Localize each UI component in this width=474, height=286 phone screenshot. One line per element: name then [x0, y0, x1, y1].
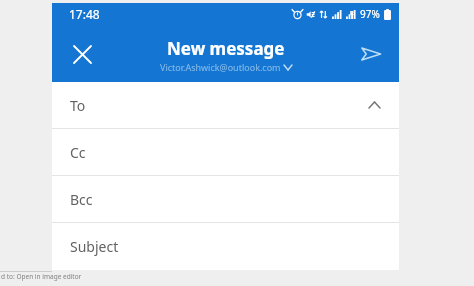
button[interactable]: Victor.Ashwick@outlook.com	[160, 61, 292, 73]
staticText: Subject	[70, 237, 119, 256]
button[interactable]: Subject	[52, 223, 399, 269]
button[interactable]: Bcc	[52, 176, 399, 222]
staticText: Bcc	[70, 190, 93, 209]
staticText: To	[70, 96, 86, 115]
staticText: Cc	[70, 143, 86, 162]
staticText: d to: Open in image editor	[1, 272, 82, 281]
button[interactable]: Cc	[52, 129, 399, 175]
staticText: R	[350, 9, 354, 16]
button[interactable]: Collapse recipients	[361, 92, 387, 118]
staticText: 97%	[360, 7, 380, 21]
button[interactable]: Send	[351, 34, 391, 74]
staticText: Victor.Ashwick@outlook.com	[160, 61, 281, 73]
staticText: 17:48	[69, 6, 100, 22]
button[interactable]: Close	[62, 34, 102, 74]
button[interactable]: To	[52, 82, 399, 128]
staticText: New message	[167, 37, 285, 60]
